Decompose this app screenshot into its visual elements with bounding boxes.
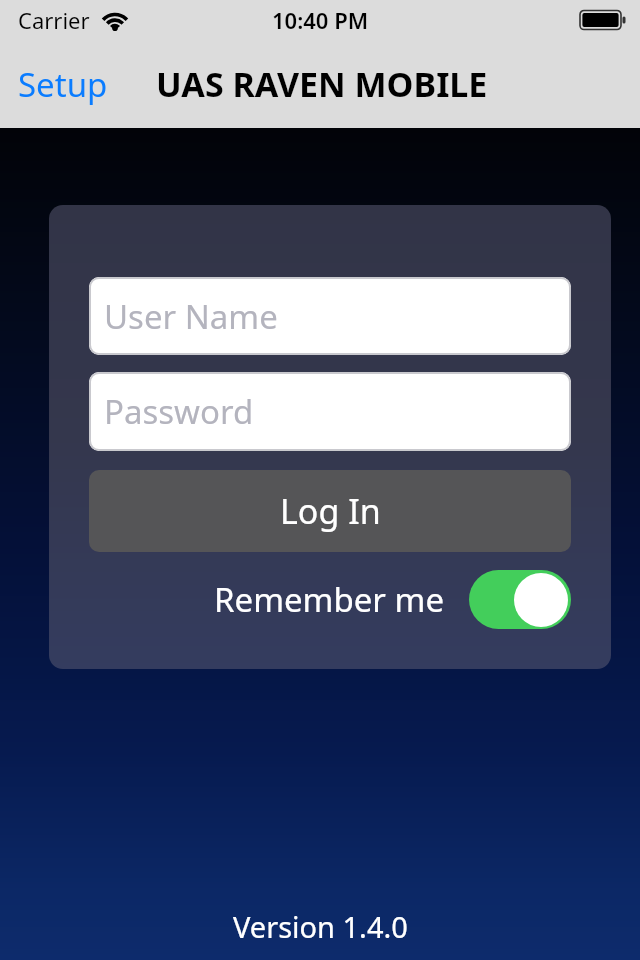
staticText: Version 1.4.0 [233,907,408,946]
staticText: Carrier [18,5,90,35]
staticText: Log In [280,488,381,534]
button[interactable]: Log In [89,470,571,552]
staticText: Password [104,389,254,434]
staticText: Remember me [214,577,445,622]
staticText: User Name [104,294,278,339]
staticText: 10:40 PM [272,5,369,35]
button[interactable] [469,570,571,629]
staticText: UAS RAVEN MOBILE [156,61,488,107]
button[interactable]: User Name [89,277,571,355]
button[interactable]: Password [89,372,571,451]
button[interactable]: Setup [18,62,108,107]
staticText: Setup [18,62,108,107]
